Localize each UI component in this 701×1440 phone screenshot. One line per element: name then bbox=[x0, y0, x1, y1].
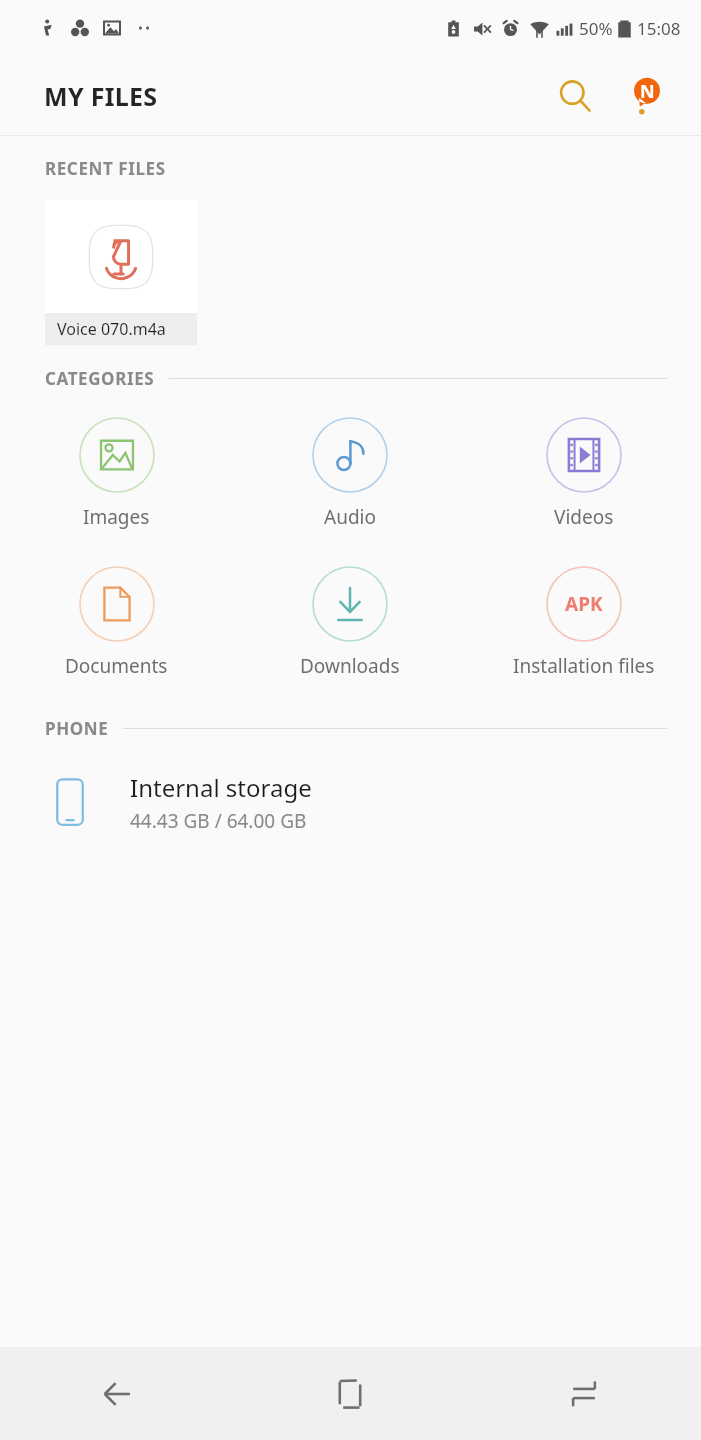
staticText: Videos bbox=[554, 504, 614, 530]
staticText: APK bbox=[565, 591, 603, 617]
button[interactable]: Downloads bbox=[233, 566, 467, 679]
button[interactable]: Internal storage bbox=[0, 766, 701, 838]
button[interactable]: Documents bbox=[0, 566, 233, 679]
staticText: PHONE bbox=[45, 717, 109, 740]
button[interactable]: Images bbox=[0, 417, 233, 530]
staticText: Internal storage bbox=[130, 771, 312, 804]
button[interactable]: Back bbox=[0, 1347, 233, 1440]
button[interactable]: Home bbox=[233, 1347, 467, 1440]
staticText: RECENT FILES bbox=[45, 157, 166, 180]
button[interactable]: Audio bbox=[233, 417, 467, 530]
staticText: 44.43 GB / 64.00 GB bbox=[130, 808, 307, 834]
button[interactable]: MY FILES bbox=[44, 79, 158, 113]
button[interactable]: Voice 070.m4a bbox=[45, 200, 197, 345]
staticText: Images bbox=[83, 504, 150, 530]
staticText: N bbox=[640, 79, 655, 104]
staticText: 50% bbox=[579, 17, 613, 40]
staticText: Installation files bbox=[513, 653, 655, 679]
staticText: Downloads bbox=[300, 653, 400, 679]
staticText: Audio bbox=[324, 504, 376, 530]
button[interactable]: APK bbox=[467, 566, 701, 679]
staticText: Documents bbox=[65, 653, 168, 679]
button[interactable]: Search bbox=[547, 68, 603, 124]
staticText: CATEGORIES bbox=[45, 367, 155, 390]
button[interactable]: Notifications bbox=[619, 68, 675, 124]
button[interactable]: Recents bbox=[467, 1347, 701, 1440]
staticText: Voice 070.m4a bbox=[57, 318, 166, 340]
staticText: MY FILES bbox=[44, 79, 158, 113]
staticText: 15:08 bbox=[637, 17, 681, 40]
button[interactable]: Videos bbox=[467, 417, 701, 530]
